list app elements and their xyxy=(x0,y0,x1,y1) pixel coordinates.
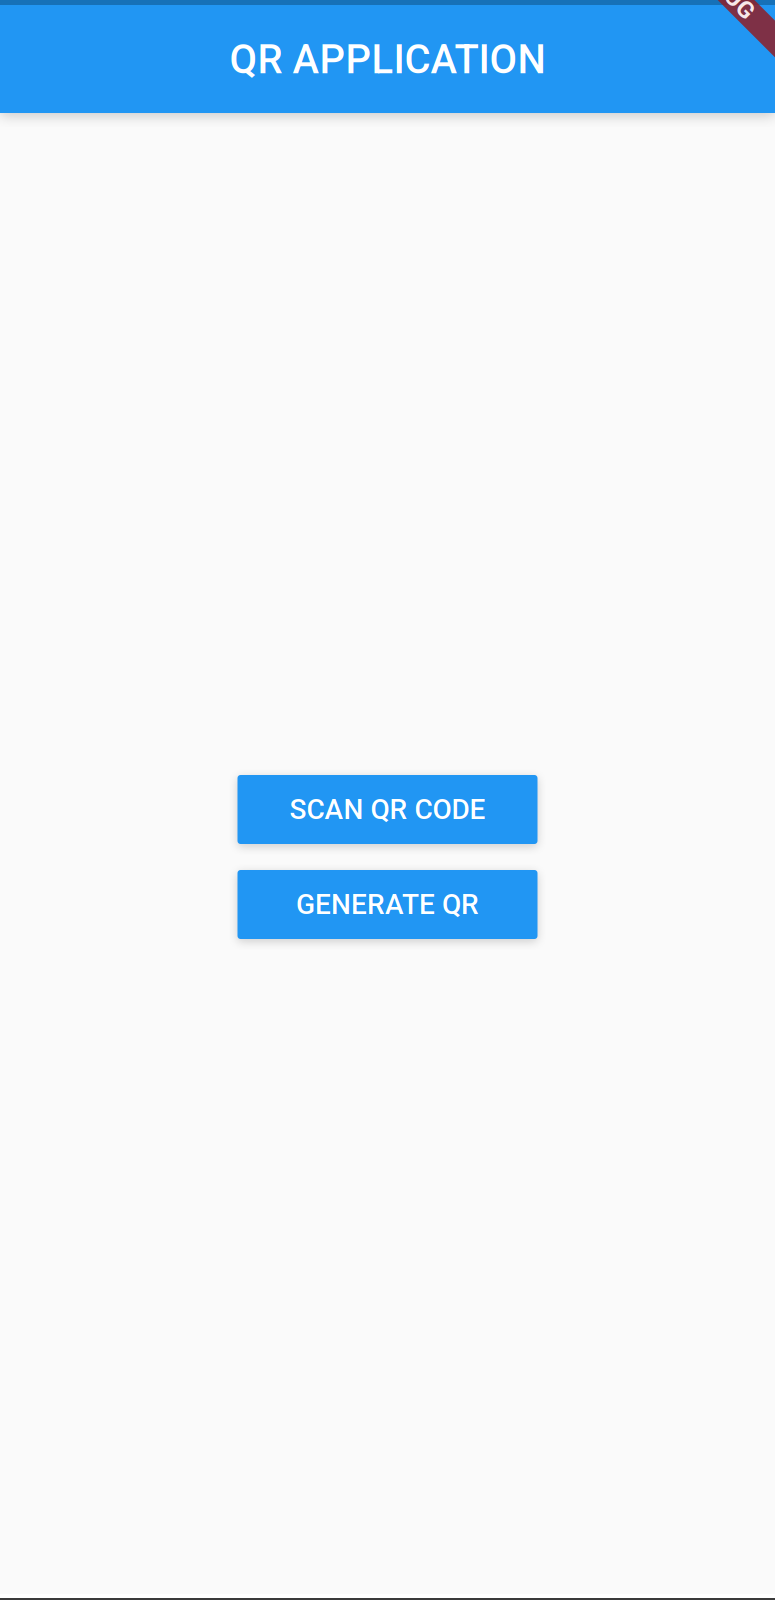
staticText: QR APPLICATION xyxy=(229,36,545,83)
staticText: DEBUG xyxy=(680,0,757,13)
staticText: SCAN QR CODE xyxy=(289,793,485,826)
button[interactable]: SCAN QR CODE xyxy=(237,775,537,844)
button[interactable]: GENERATE QR xyxy=(237,870,537,939)
staticText: GENERATE QR xyxy=(296,888,479,921)
